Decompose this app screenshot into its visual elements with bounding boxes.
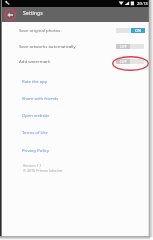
- staticText: Open website: [22, 112, 50, 118]
- button[interactable]: Add watermark: [2, 54, 149, 70]
- staticText: Terms of Use: [22, 129, 49, 135]
- staticText: Privacy Policy: [22, 147, 49, 153]
- staticText: Save artworks automatically: [19, 43, 76, 49]
- button[interactable]: Toggle off: [116, 59, 145, 64]
- button[interactable]: Privacy Policy: [2, 141, 149, 158]
- button[interactable]: Back: [2, 7, 21, 22]
- staticText: Add watermark: [19, 58, 51, 64]
- button[interactable]: Share with friends: [2, 89, 149, 106]
- staticText: Settings: [23, 9, 43, 16]
- staticText: © 2016 Prisma Labs inc: [23, 168, 63, 173]
- staticText: Share with friends: [22, 95, 59, 101]
- button[interactable]: Terms of Use: [2, 123, 149, 140]
- staticText: Rate the app: [22, 78, 48, 84]
- button[interactable]: Toggle on: [116, 28, 145, 33]
- staticText: ON: [135, 28, 141, 33]
- staticText: 20:13: [137, 1, 148, 7]
- button[interactable]: Save original photos: [2, 23, 149, 39]
- button[interactable]: Toggle off: [116, 44, 145, 49]
- button[interactable]: Open website: [2, 106, 149, 123]
- staticText: OFF: [120, 59, 127, 64]
- button[interactable]: Save artworks automatically: [2, 39, 149, 55]
- button[interactable]: Rate the app: [2, 72, 149, 89]
- staticText: OFF: [120, 44, 127, 49]
- staticText: Version 1.1: [23, 163, 42, 168]
- staticText: Save original photos: [19, 27, 61, 33]
